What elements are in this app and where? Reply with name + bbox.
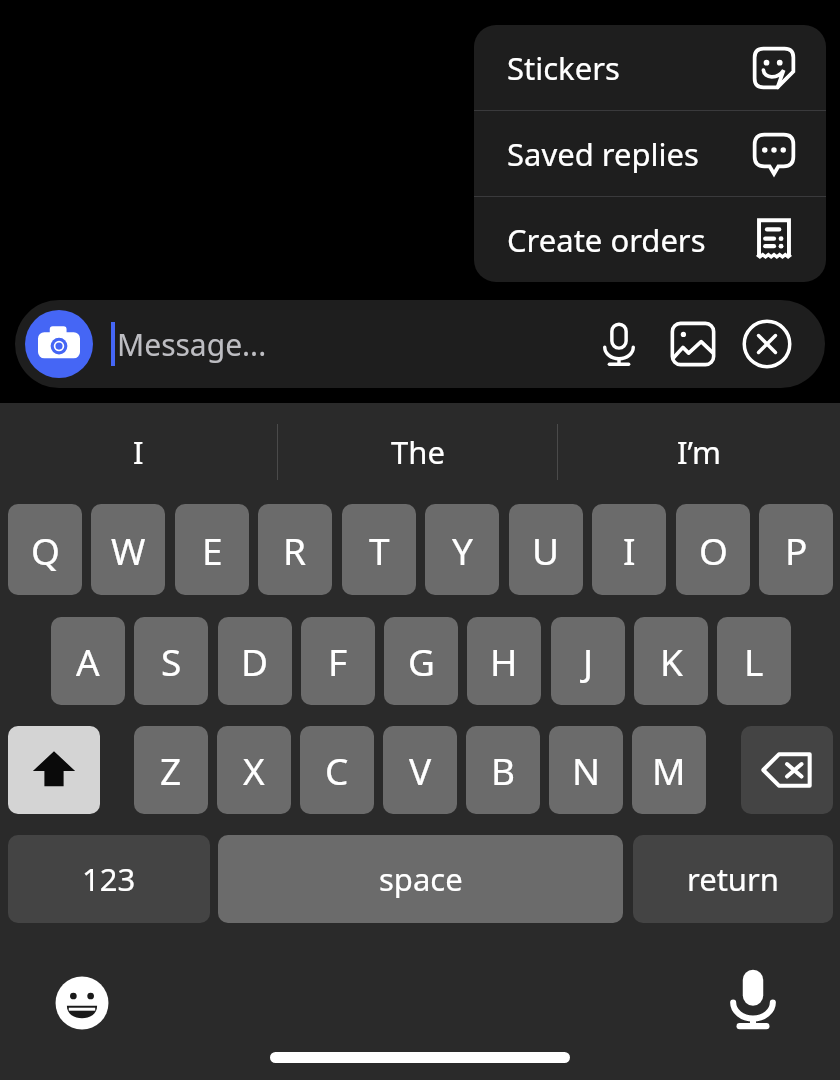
staticText: C <box>325 745 349 795</box>
button[interactable]: Create orders <box>474 197 826 282</box>
staticText: B <box>491 745 516 795</box>
staticText: G <box>408 636 435 686</box>
staticText: L <box>744 636 764 686</box>
button[interactable]: Y <box>425 504 499 595</box>
staticText: Saved replies <box>507 133 699 175</box>
staticText: Stickers <box>507 47 620 89</box>
button[interactable]: L <box>717 617 791 705</box>
button[interactable]: C <box>300 726 374 814</box>
button[interactable]: X <box>217 726 291 814</box>
staticText: P <box>785 525 808 575</box>
staticText: I <box>133 431 144 473</box>
button[interactable]: P <box>759 504 833 595</box>
button[interactable]: F <box>301 617 375 705</box>
staticText: O <box>699 525 728 575</box>
staticText: Create orders <box>507 219 706 261</box>
staticText: T <box>369 525 390 575</box>
button[interactable]: D <box>218 617 292 705</box>
button[interactable]: return <box>633 835 833 923</box>
staticText: U <box>532 525 560 575</box>
button[interactable]: T <box>342 504 416 595</box>
button[interactable]: G <box>384 617 458 705</box>
button[interactable]: I <box>0 403 277 501</box>
staticText: W <box>111 525 146 575</box>
staticText: A <box>76 636 100 686</box>
staticText: Y <box>452 525 473 575</box>
button[interactable]: I <box>592 504 666 595</box>
button[interactable]: space <box>218 835 623 923</box>
button[interactable]: N <box>549 726 623 814</box>
button[interactable]: J <box>551 617 625 705</box>
button[interactable]: H <box>467 617 541 705</box>
staticText: Z <box>160 745 182 795</box>
staticText: X <box>243 745 265 795</box>
staticText: Message... <box>117 324 267 365</box>
button[interactable]: Emoji <box>40 961 124 1045</box>
button[interactable]: Shift <box>8 726 100 814</box>
staticText: R <box>283 525 307 575</box>
staticText: J <box>583 636 594 686</box>
staticText: return <box>687 858 779 900</box>
staticText: N <box>572 745 601 795</box>
button[interactable]: Voice message <box>589 314 649 374</box>
staticText: The <box>391 431 445 473</box>
staticText: I’m <box>677 431 721 473</box>
button[interactable]: I’m <box>558 403 840 501</box>
button[interactable]: Q <box>8 504 82 595</box>
button[interactable]: S <box>134 617 208 705</box>
staticText: space <box>379 858 463 900</box>
button[interactable]: Backspace <box>741 726 833 814</box>
button[interactable]: Camera <box>25 310 93 378</box>
button[interactable]: W <box>91 504 165 595</box>
button[interactable]: A <box>51 617 125 705</box>
button[interactable]: K <box>634 617 708 705</box>
button[interactable]: Dictation <box>711 956 795 1040</box>
staticText: E <box>202 525 223 575</box>
button[interactable]: Saved replies <box>474 111 826 196</box>
button[interactable]: Z <box>134 726 208 814</box>
button[interactable]: V <box>383 726 457 814</box>
staticText: I <box>623 525 636 575</box>
staticText: D <box>241 636 269 686</box>
staticText: V <box>409 745 432 795</box>
button[interactable]: U <box>509 504 583 595</box>
button[interactable]: M <box>632 726 706 814</box>
staticText: 123 <box>82 858 136 900</box>
staticText: H <box>490 636 518 686</box>
button[interactable]: E <box>175 504 249 595</box>
button[interactable]: Close <box>737 314 797 374</box>
staticText: F <box>328 636 348 686</box>
staticText: M <box>652 745 686 795</box>
staticText: K <box>660 636 683 686</box>
button[interactable]: Stickers <box>474 25 826 110</box>
button[interactable]: The <box>278 403 557 501</box>
staticText: S <box>161 636 182 686</box>
button[interactable]: Gallery <box>663 314 723 374</box>
button[interactable]: O <box>676 504 750 595</box>
button[interactable]: 123 <box>8 835 210 923</box>
button[interactable]: B <box>466 726 540 814</box>
button[interactable]: R <box>258 504 332 595</box>
staticText: Q <box>31 525 60 575</box>
